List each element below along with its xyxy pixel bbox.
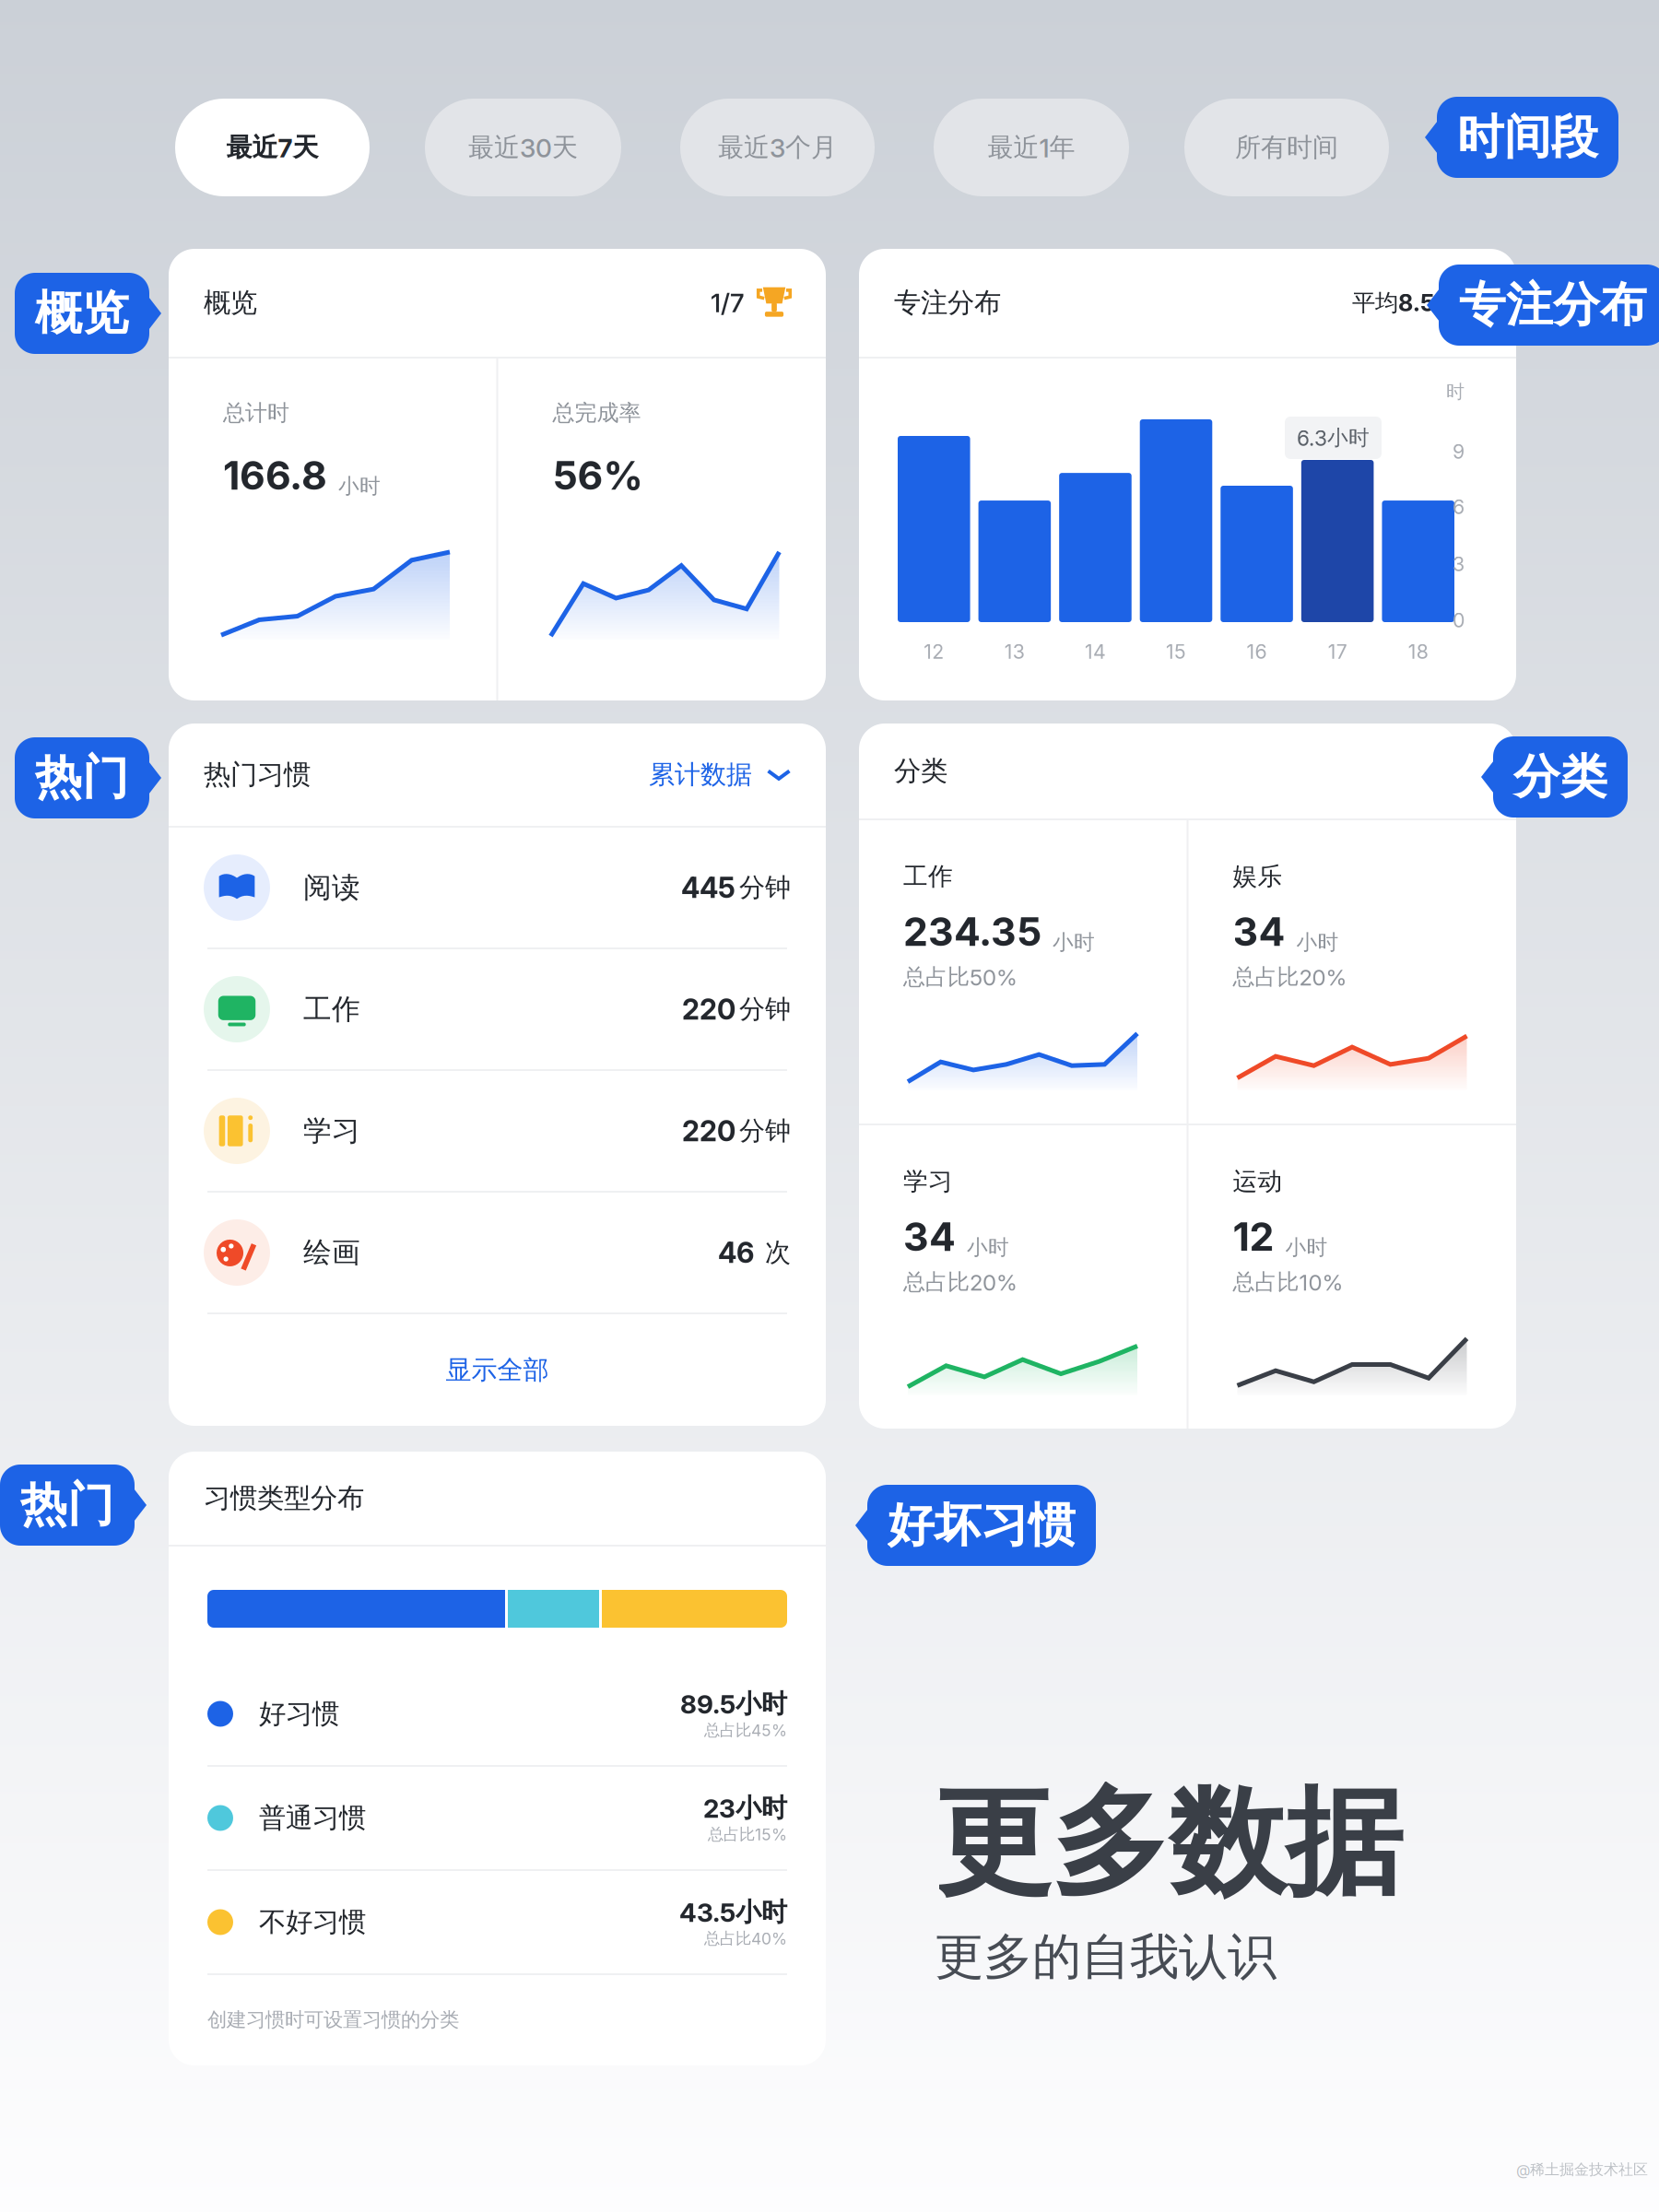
staticText: 阅读: [303, 870, 360, 905]
staticText: 分类: [1513, 748, 1607, 806]
staticText: 8.5: [1398, 289, 1435, 317]
staticText: 445: [681, 870, 735, 905]
staticText: 普通习惯: [259, 1801, 366, 1835]
staticText: 运动: [1233, 1166, 1282, 1197]
staticText: 43.5小时: [679, 1896, 787, 1928]
staticText: 总计时: [223, 399, 289, 427]
staticText: 6: [1453, 495, 1465, 519]
staticText: 娱乐: [1233, 861, 1282, 892]
staticText: 热门: [35, 748, 129, 807]
button[interactable]: 工作: [169, 949, 826, 1069]
staticText: 工作: [903, 861, 953, 892]
staticText: 18: [1408, 640, 1428, 664]
staticText: 总占比50%: [903, 963, 1018, 991]
staticText: 小时: [1285, 1234, 1328, 1261]
staticText: 概览: [204, 286, 257, 320]
button[interactable]: 最近1年: [934, 99, 1129, 196]
staticText: 总占比10%: [1233, 1268, 1343, 1296]
staticText: 专注分布: [894, 286, 1001, 320]
staticText: 220: [682, 1114, 735, 1148]
staticText: 220: [682, 992, 735, 1026]
staticText: 更多数据: [935, 1770, 1403, 1917]
staticText: 绘画: [303, 1235, 360, 1270]
staticText: 最近7天: [226, 131, 318, 164]
staticText: 分类: [894, 754, 947, 788]
staticText: 89.5小时: [680, 1687, 787, 1720]
staticText: 更多的自我认识: [935, 1926, 1277, 1988]
button[interactable]: 阅读: [169, 828, 826, 947]
staticText: 学习: [303, 1113, 360, 1149]
staticText: 显示全部: [446, 1354, 549, 1386]
staticText: 时间段: [1457, 108, 1598, 167]
button[interactable]: 学习: [169, 1071, 826, 1191]
staticText: 总占比40%: [704, 1928, 787, 1948]
button[interactable]: 显示全部: [169, 1314, 826, 1426]
staticText: 平均: [1352, 288, 1398, 317]
staticText: 34: [903, 1213, 956, 1260]
staticText: 最近3个月: [718, 131, 837, 164]
button[interactable]: 最近3个月: [680, 99, 875, 196]
staticText: 17: [1328, 640, 1347, 664]
staticText: 23小时: [703, 1792, 787, 1824]
staticText: 累计数据: [649, 758, 752, 791]
staticText: 56%: [553, 452, 643, 499]
staticText: 46: [718, 1235, 754, 1270]
staticText: 热门: [20, 1476, 114, 1534]
staticText: 12: [1233, 1213, 1274, 1260]
staticText: 6.3小时: [1297, 425, 1370, 451]
staticText: 总完成率: [553, 399, 641, 427]
staticText: 9: [1453, 440, 1465, 464]
staticText: 总占比15%: [708, 1824, 787, 1844]
staticText: 总占比20%: [903, 1268, 1018, 1296]
staticText: 热门习惯: [204, 758, 311, 792]
staticText: @稀土掘金技术社区: [1516, 2160, 1648, 2179]
staticText: 最近30天: [468, 131, 578, 164]
staticText: 好坏习惯: [888, 1496, 1076, 1555]
staticText: 166.8: [223, 452, 327, 499]
staticText: 小时: [967, 1234, 1009, 1261]
staticText: 0: [1453, 608, 1465, 632]
staticText: 时: [1446, 380, 1465, 403]
staticText: 小时: [1296, 929, 1339, 955]
staticText: 习惯类型分布: [204, 1481, 364, 1515]
staticText: 创建习惯时可设置习惯的分类: [207, 2007, 459, 2032]
staticText: 3: [1453, 552, 1465, 576]
staticText: 工作: [303, 991, 360, 1027]
button[interactable]: 所有时间: [1184, 99, 1389, 196]
staticText: 最近1年: [988, 131, 1075, 164]
button[interactable]: 绘画: [169, 1193, 826, 1312]
staticText: 分钟: [739, 1115, 791, 1147]
staticText: 学习: [903, 1166, 953, 1197]
staticText: 分钟: [739, 993, 791, 1026]
staticText: 次: [758, 1236, 791, 1269]
staticText: 不好习惯: [259, 1905, 366, 1939]
staticText: 16: [1247, 640, 1267, 664]
staticText: 12: [924, 640, 944, 664]
staticText: 好习惯: [259, 1697, 339, 1731]
staticText: 分钟: [739, 871, 791, 904]
staticText: 总占比45%: [704, 1720, 787, 1740]
staticText: 14: [1085, 640, 1106, 664]
button[interactable]: 累计数据: [649, 758, 791, 791]
staticText: 34: [1233, 908, 1285, 955]
staticText: 专注分布: [1459, 276, 1647, 334]
button[interactable]: 最近7天: [175, 99, 370, 196]
staticText: 1/7: [711, 287, 745, 318]
staticText: 小时: [1053, 929, 1095, 955]
staticText: 小时: [1435, 288, 1481, 317]
staticText: 概览: [35, 284, 129, 343]
button[interactable]: 最近30天: [425, 99, 621, 196]
staticText: 13: [1005, 640, 1025, 664]
staticText: 总占比20%: [1233, 963, 1347, 991]
staticText: 所有时间: [1235, 131, 1338, 164]
staticText: 234.35: [903, 908, 1041, 955]
staticText: 15: [1166, 640, 1186, 664]
staticText: 小时: [338, 473, 381, 499]
